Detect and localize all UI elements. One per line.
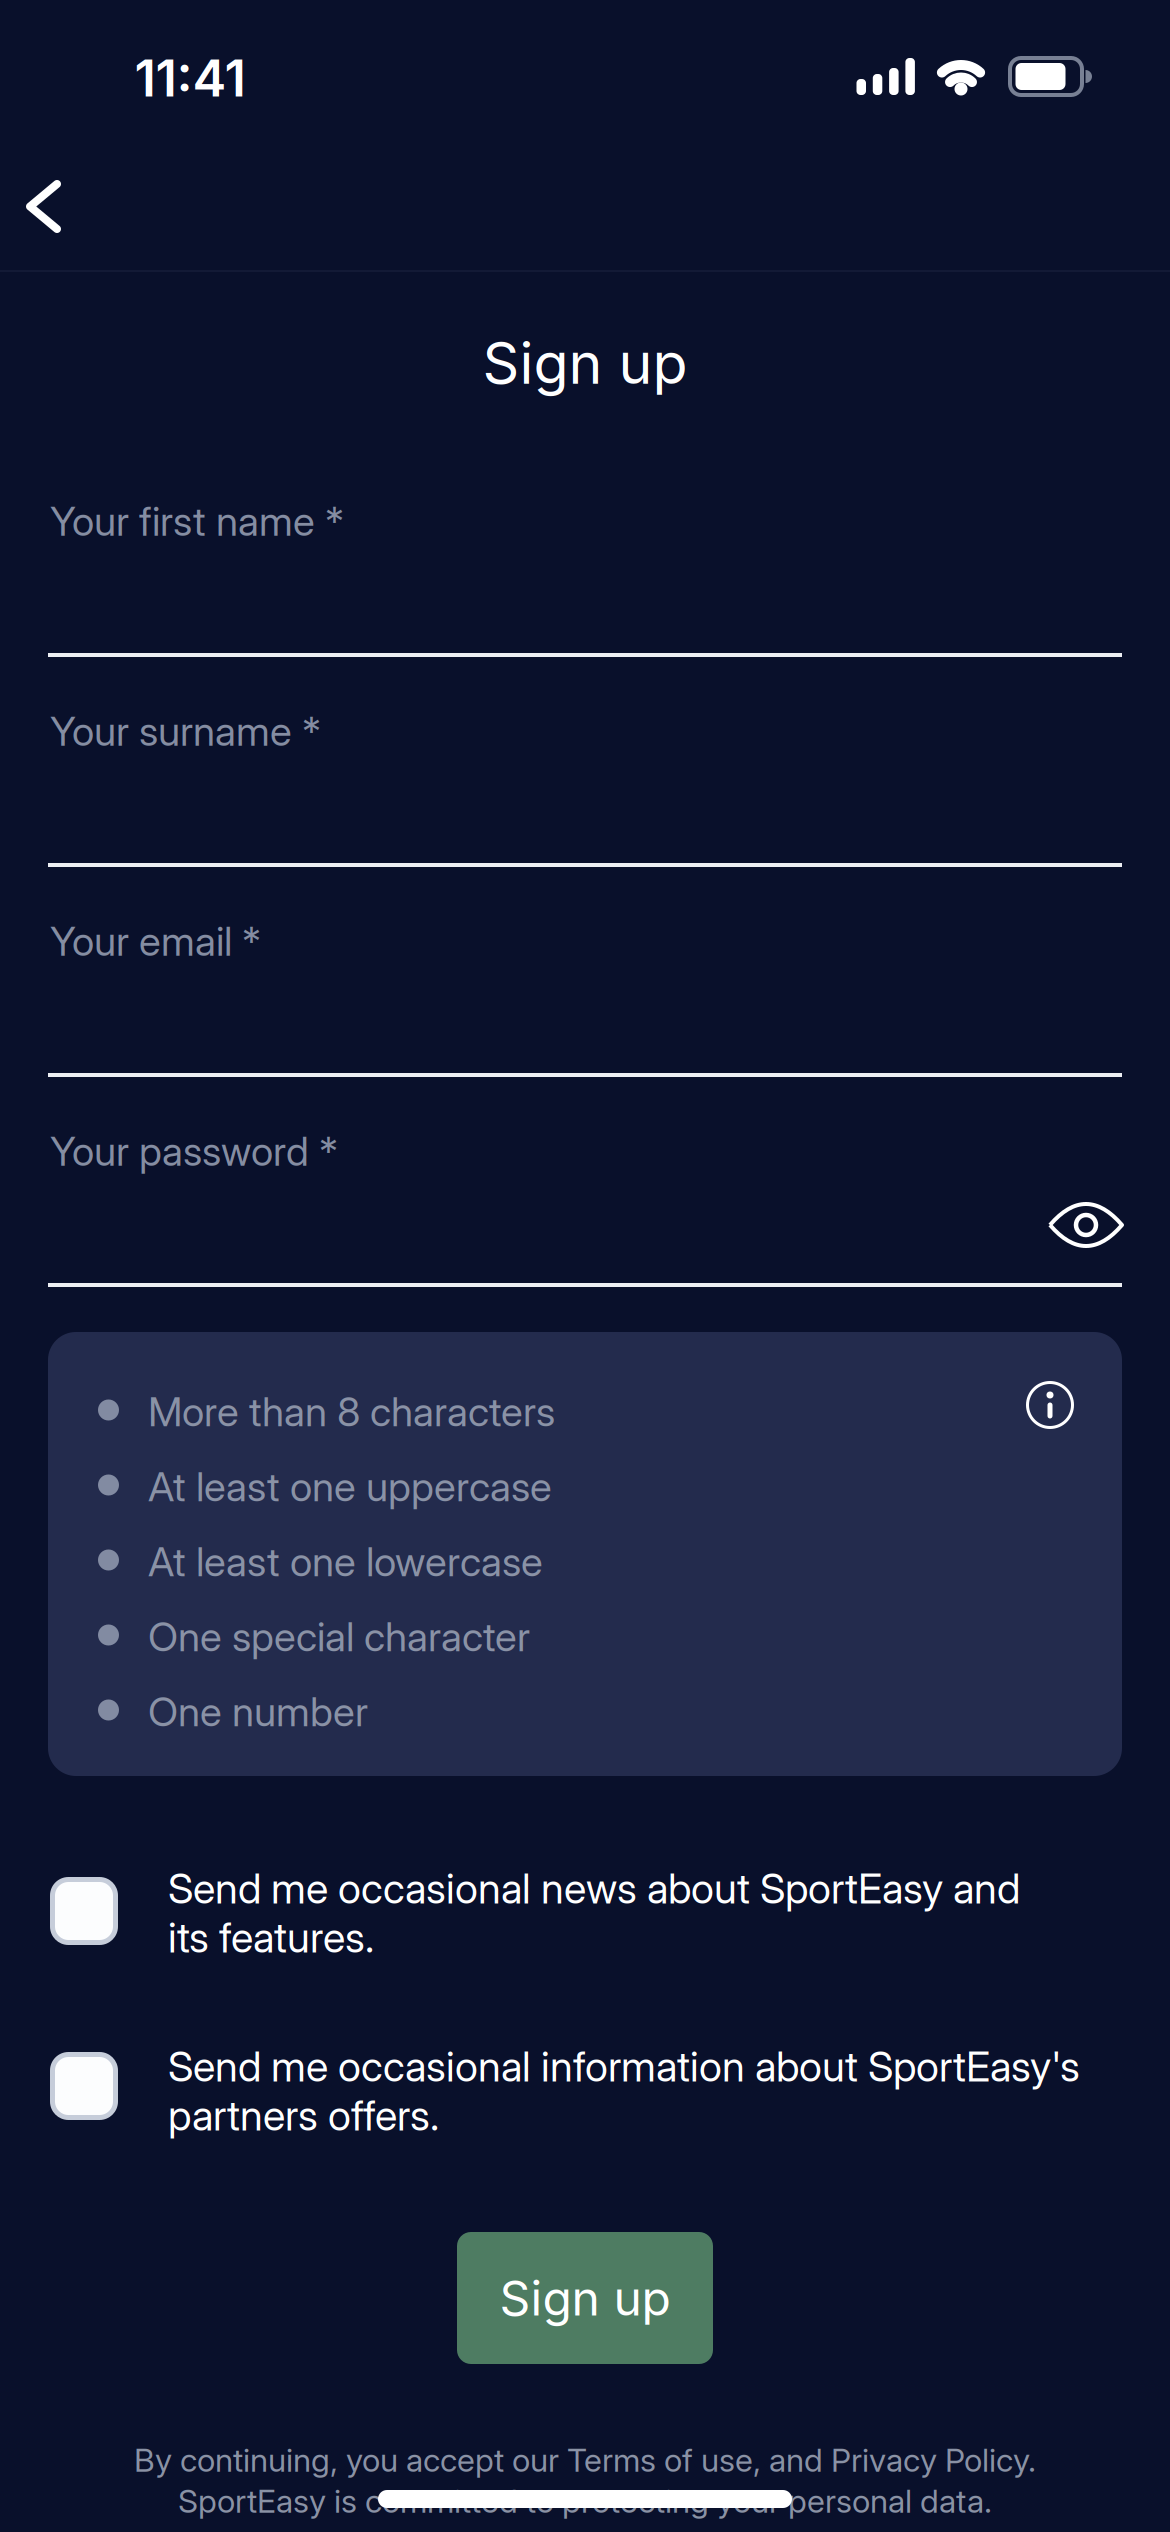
staticText: One special character xyxy=(148,1613,530,1660)
staticText: Your first name * xyxy=(50,497,344,545)
staticText: Send me occasional information about Spo… xyxy=(168,2042,1080,2091)
staticText: Your surname * xyxy=(50,707,321,755)
button[interactable]: Sign up xyxy=(457,2232,713,2364)
button[interactable]: Back xyxy=(18,176,74,237)
button[interactable]: Password rules info xyxy=(1027,1382,1072,1427)
button[interactable]: Send me occasional news about SportEasy … xyxy=(0,1864,1170,1974)
staticText: At least one lowercase xyxy=(148,1538,543,1585)
staticText: Sign up xyxy=(482,329,687,397)
staticText: partners offers. xyxy=(168,2091,439,2140)
staticText: One number xyxy=(148,1688,368,1735)
staticText: its features. xyxy=(168,1913,374,1962)
staticText: Send me occasional news about SportEasy … xyxy=(168,1864,1020,1913)
staticText: 11:41 xyxy=(134,48,245,108)
button[interactable]: Show password xyxy=(1047,1201,1125,1249)
staticText: By continuing, you accept our Terms of u… xyxy=(134,2441,1036,2479)
staticText: More than 8 characters xyxy=(148,1388,555,1435)
staticText: Your email * xyxy=(50,917,261,965)
button[interactable]: Send me occasional information about Spo… xyxy=(0,2042,1170,2152)
staticText: SportEasy is committed to protecting you… xyxy=(178,2482,992,2520)
staticText: Your password * xyxy=(50,1127,338,1175)
staticText: Sign up xyxy=(499,2270,670,2326)
staticText: At least one uppercase xyxy=(148,1463,552,1510)
